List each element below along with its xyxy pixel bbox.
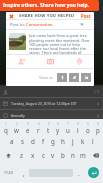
button[interactable]: Annually bbox=[3, 110, 100, 121]
button[interactable]: Add photo bbox=[6, 55, 36, 68]
staticText: SHARE HOW YOU HELPED bbox=[19, 13, 75, 19]
staticText: v bbox=[51, 151, 55, 159]
button[interactable]: 8 bbox=[73, 121, 83, 134]
staticText: b bbox=[61, 151, 65, 159]
button[interactable]: a bbox=[6, 134, 17, 148]
staticText: p bbox=[96, 126, 100, 134]
staticText: Tuesday, August 23, 2016 at 12:30pm EST bbox=[11, 101, 77, 106]
button[interactable]: Enter bbox=[88, 167, 99, 178]
button[interactable]: c bbox=[38, 148, 48, 162]
button[interactable]: 9 bbox=[83, 121, 93, 134]
staticText: Annually bbox=[11, 113, 25, 118]
staticText: 7 bbox=[67, 122, 69, 126]
staticText: UTC bbox=[94, 90, 100, 94]
staticText: Share to: bbox=[39, 75, 54, 80]
staticText: d bbox=[31, 137, 35, 145]
button[interactable]: 7 bbox=[63, 121, 73, 134]
staticText: y bbox=[56, 126, 60, 134]
button[interactable]: Close bbox=[8, 13, 14, 19]
button[interactable]: Twitter bbox=[69, 73, 79, 82]
staticText: , bbox=[23, 169, 25, 177]
staticText: Inspire others. Share how you help. bbox=[3, 2, 90, 9]
button[interactable]: f bbox=[38, 134, 48, 148]
staticText: u bbox=[66, 126, 70, 134]
staticText: n bbox=[71, 151, 75, 159]
staticText: . bbox=[78, 169, 80, 177]
staticText: j bbox=[72, 137, 74, 145]
staticText: 0 bbox=[97, 122, 99, 126]
button[interactable]: n bbox=[68, 148, 78, 162]
button[interactable]: g bbox=[48, 134, 58, 148]
button[interactable]: z bbox=[16, 148, 27, 162]
button[interactable]: j bbox=[68, 134, 78, 148]
staticText: r bbox=[37, 126, 40, 134]
staticText: h bbox=[61, 137, 65, 145]
staticText: Just came back from a great tree plantin… bbox=[29, 33, 91, 54]
staticText: Conservation bbox=[26, 22, 53, 28]
staticText: 5 bbox=[48, 122, 50, 126]
staticText: o bbox=[86, 126, 90, 134]
button[interactable]: h bbox=[58, 134, 68, 148]
button[interactable]: LinkedIn bbox=[81, 73, 91, 82]
button[interactable]: s bbox=[17, 134, 28, 148]
button[interactable]: l bbox=[88, 134, 98, 148]
button[interactable]: b bbox=[58, 148, 68, 162]
button[interactable]: m bbox=[78, 148, 88, 162]
button[interactable]: 0 bbox=[93, 121, 103, 134]
staticText: 4 bbox=[38, 122, 40, 126]
staticText: g bbox=[51, 137, 55, 145]
button[interactable]: Tuesday, August 23, 2016 at 12:30pm EST bbox=[3, 98, 100, 109]
staticText: s bbox=[21, 137, 24, 145]
button[interactable]: 6 bbox=[53, 121, 63, 134]
staticText: ?123 bbox=[4, 170, 14, 176]
button[interactable]: Shift bbox=[0, 148, 16, 162]
button[interactable]: 2 bbox=[11, 121, 22, 134]
button[interactable]: Add location bbox=[65, 55, 94, 68]
button[interactable]: Camera bbox=[36, 55, 65, 68]
staticText: a bbox=[10, 137, 14, 145]
staticText: t bbox=[47, 126, 50, 134]
staticText: Post bbox=[81, 13, 91, 19]
button[interactable]: 4 bbox=[33, 121, 43, 134]
button[interactable]: v bbox=[48, 148, 58, 162]
staticText: c bbox=[42, 151, 45, 159]
button[interactable]: . bbox=[73, 162, 84, 183]
staticText: 3 bbox=[27, 122, 29, 126]
button[interactable]: , bbox=[18, 162, 29, 183]
button[interactable]: d bbox=[28, 134, 38, 148]
staticText: m bbox=[80, 151, 86, 159]
button[interactable]: x bbox=[27, 148, 38, 162]
staticText: z bbox=[20, 151, 23, 159]
button[interactable]: 5 bbox=[43, 121, 53, 134]
staticText: 1 bbox=[5, 122, 7, 126]
button[interactable]: Post bbox=[80, 13, 92, 19]
staticText: 8 bbox=[77, 122, 79, 126]
staticText: q bbox=[4, 126, 8, 134]
staticText: i bbox=[77, 126, 79, 134]
button[interactable]: 3 bbox=[22, 121, 33, 134]
button[interactable]: Facebook bbox=[57, 73, 67, 82]
staticText: x bbox=[31, 151, 35, 159]
staticText: e bbox=[26, 126, 30, 134]
staticText: l bbox=[92, 137, 94, 145]
button[interactable]: k bbox=[78, 134, 88, 148]
button[interactable]: Inspire others. Share how you help. bbox=[0, 0, 99, 11]
staticText: k bbox=[81, 137, 85, 145]
button[interactable]: ?123 bbox=[0, 162, 18, 183]
staticText: w bbox=[14, 126, 19, 134]
button[interactable]: Post to: bbox=[10, 20, 84, 29]
staticText: 6 bbox=[57, 122, 59, 126]
staticText: 2 bbox=[16, 122, 18, 126]
button[interactable]: Backspace bbox=[88, 148, 103, 162]
staticText: 9 bbox=[87, 122, 89, 126]
button[interactable]: 1 bbox=[0, 121, 11, 134]
staticText: Post to: bbox=[10, 22, 26, 28]
staticText: f bbox=[42, 137, 45, 145]
